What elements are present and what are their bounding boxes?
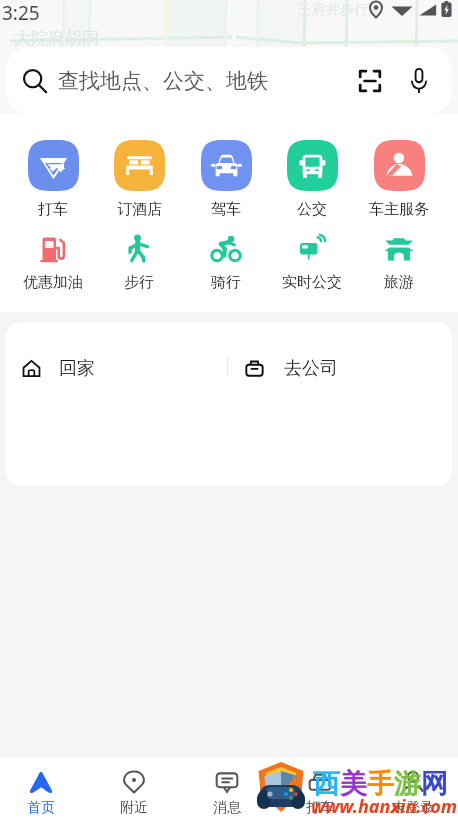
staticText: www.hanxin.com <box>311 794 457 819</box>
button[interactable]: 订酒店 <box>96 136 182 219</box>
staticText: 查找地点、公交、地铁 <box>58 68 268 94</box>
staticText: 打车 <box>38 200 68 219</box>
button[interactable]: 步行 <box>96 234 182 292</box>
button[interactable]: 消息 <box>183 758 271 820</box>
staticText: 游 <box>394 767 421 801</box>
staticText: 附近 <box>120 799 148 817</box>
button[interactable]: 去公司 <box>237 346 437 390</box>
button[interactable]: 优惠加油 <box>10 234 96 292</box>
button[interactable]: 公交 <box>269 136 355 219</box>
button[interactable]: 车主服务 <box>356 136 442 219</box>
button[interactable]: 首页 <box>0 758 85 820</box>
staticText: 消息 <box>213 799 241 817</box>
staticText: 优惠加油 <box>23 273 83 292</box>
staticText: 驾车 <box>211 200 241 219</box>
staticText: 实时公交 <box>282 273 342 292</box>
staticText: 打车 <box>306 799 334 817</box>
staticText: 车主服务 <box>369 200 429 219</box>
button[interactable]: 语音搜索 Voice search <box>408 66 430 95</box>
staticText: 手 <box>367 767 394 801</box>
button[interactable]: 未登录 <box>369 758 457 820</box>
button[interactable]: 查找地点、公交、地铁 <box>6 47 452 114</box>
staticText: 大院府胡同 <box>14 28 99 49</box>
staticText: 3:25 <box>2 0 40 26</box>
button[interactable]: 旅游 <box>356 234 442 292</box>
staticText: 公交 <box>297 200 327 219</box>
staticText: 旅游 <box>384 273 414 292</box>
staticText: 网 <box>421 767 448 801</box>
staticText: 首页 <box>27 799 55 817</box>
staticText: 订酒店 <box>117 200 162 219</box>
staticText: 骑行 <box>211 273 241 292</box>
staticText: 步行 <box>124 273 154 292</box>
staticText: 回家 <box>59 357 95 380</box>
staticText: 西 <box>313 767 340 801</box>
button[interactable]: 驾车 <box>183 136 269 219</box>
staticText: 美 <box>340 767 367 801</box>
button[interactable]: 回家 <box>14 346 224 390</box>
staticText: 王府井步行街 <box>298 1 382 19</box>
staticText: 未登录 <box>392 799 434 817</box>
button[interactable]: 实时公交 <box>269 234 355 292</box>
button[interactable]: 附近 <box>90 758 178 820</box>
button[interactable]: 骑行 <box>183 234 269 292</box>
staticText: 去公司 <box>284 357 338 380</box>
button[interactable]: 打车 <box>10 136 96 219</box>
button[interactable]: 扫一扫 Scan <box>357 68 383 94</box>
button[interactable]: 打车 <box>276 758 364 820</box>
